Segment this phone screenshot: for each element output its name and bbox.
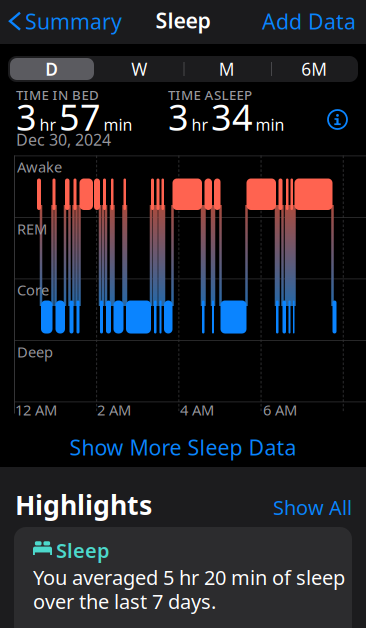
- staticText: hr: [191, 114, 208, 135]
- staticText: 3: [168, 93, 189, 141]
- staticText: 57: [59, 93, 101, 141]
- staticText: 34: [211, 93, 253, 141]
- staticText: Awake: [17, 157, 62, 176]
- staticText: TIME ASLEEP: [168, 86, 252, 104]
- staticText: 12 AM: [15, 400, 57, 419]
- staticText: Dec 30, 2024: [16, 129, 111, 150]
- staticText: TIME IN BED: [16, 86, 99, 104]
- button[interactable]: 6M: [270, 56, 358, 82]
- button[interactable]: Summary: [10, 7, 122, 35]
- staticText: 6 AM: [263, 400, 297, 419]
- staticText: Sleep: [155, 6, 210, 34]
- staticText: 2 AM: [97, 400, 131, 419]
- staticText: min: [255, 114, 284, 135]
- staticText: Sleep: [56, 537, 110, 564]
- button[interactable]: [326, 108, 349, 131]
- staticText: Core: [17, 280, 49, 299]
- staticText: Show All: [273, 494, 352, 521]
- staticText: Highlights: [15, 487, 152, 522]
- staticText: Summary: [25, 7, 122, 35]
- button[interactable]: D: [8, 56, 95, 82]
- staticText: Deep: [17, 342, 53, 361]
- staticText: hr: [39, 114, 56, 135]
- button[interactable]: Show All: [272, 494, 352, 521]
- staticText: Add Data: [262, 7, 356, 35]
- staticText: M: [219, 57, 235, 80]
- staticText: W: [131, 57, 147, 80]
- staticText: D: [45, 57, 58, 80]
- button[interactable]: Show More Sleep Data: [0, 433, 366, 461]
- button[interactable]: M: [183, 56, 270, 82]
- staticText: 3: [16, 93, 37, 141]
- button[interactable]: Sleep: [14, 527, 352, 628]
- staticText: min: [103, 114, 132, 135]
- staticText: over the last 7 days.: [33, 588, 216, 615]
- staticText: 6M: [301, 57, 327, 80]
- staticText: You averaged 5 hr 20 min of sleep: [33, 564, 345, 591]
- button[interactable]: W: [95, 56, 183, 82]
- staticText: 4 AM: [180, 400, 214, 419]
- button[interactable]: Add Data: [236, 7, 356, 35]
- staticText: Show More Sleep Data: [69, 433, 296, 461]
- staticText: REM: [17, 219, 47, 238]
